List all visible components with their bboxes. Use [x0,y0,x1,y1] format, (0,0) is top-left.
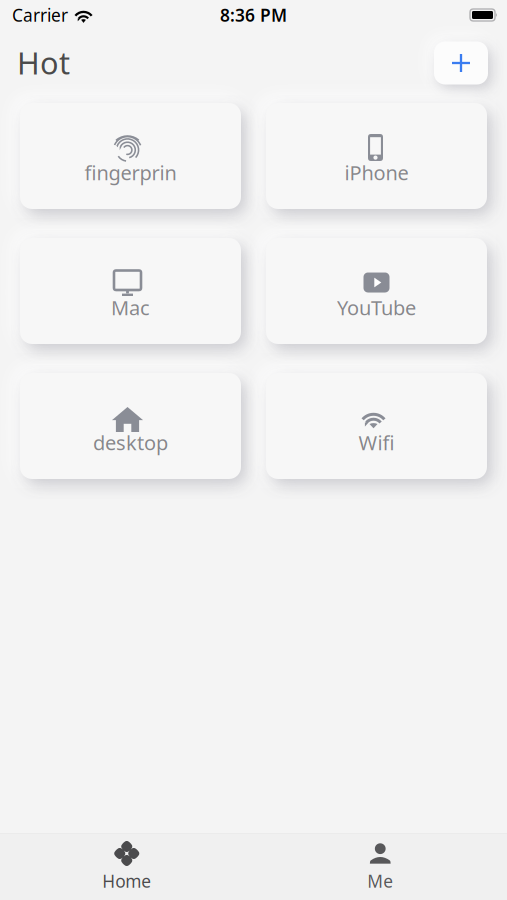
staticText: Carrier [12,3,68,26]
staticText: Home [102,869,151,892]
staticText: fingerprin [84,159,176,186]
button[interactable]: desktop [20,373,241,479]
button[interactable]: Home [0,834,253,898]
button[interactable]: iPhone [266,103,487,209]
staticText: YouTube [337,294,416,321]
staticText: Mac [111,294,150,321]
button[interactable]: Wifi [266,373,487,479]
staticText: iPhone [344,159,408,186]
staticText: Hot [17,42,70,83]
button[interactable]: YouTube [266,238,487,344]
button[interactable]: Mac [20,238,241,344]
staticText: Me [367,869,393,892]
button[interactable]: fingerprin [20,103,241,209]
staticText: desktop [93,429,168,456]
button[interactable]: Add [434,31,488,84]
staticText: 8:36 PM [220,3,287,26]
staticText: Wifi [358,429,394,456]
button[interactable]: Me [253,834,507,898]
